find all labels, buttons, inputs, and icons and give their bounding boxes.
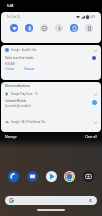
staticText: Take out the trash	[5, 55, 34, 60]
button[interactable]	[5, 196, 97, 205]
button[interactable]: Quick setting	[10, 24, 18, 32]
button[interactable]: Camera	[83, 171, 94, 182]
staticText: 8:00 AM	[5, 62, 15, 66]
button[interactable]: Quick setting	[55, 24, 63, 32]
staticText: Successfully installed	[5, 104, 31, 108]
staticText: Google · Autofill · 8m	[11, 48, 37, 52]
button[interactable]: Manage	[5, 135, 17, 139]
button[interactable]: Chrome	[64, 171, 75, 182]
button[interactable]: Quick setting	[85, 24, 93, 32]
button[interactable]: Google · Autofill · 8m	[1, 45, 101, 80]
staticText: 62%	[90, 15, 96, 19]
staticText: Google · Wi-Fi Pantheria Fib…	[11, 120, 47, 124]
button[interactable]: 1 hour	[5, 67, 15, 71]
button[interactable]: Snooze	[24, 67, 35, 71]
staticText: 5:58	[7, 4, 14, 8]
button[interactable]: Messages	[27, 171, 38, 182]
button[interactable]: Phone	[8, 171, 19, 182]
staticText: Silent notifications	[5, 84, 30, 88]
button[interactable]: Google · Wi-Fi Pantheria Fib…	[5, 120, 97, 124]
button[interactable]: Play Store	[46, 171, 57, 182]
button[interactable]: Clear all	[85, 135, 97, 139]
staticText: Schwab Mobile	[5, 99, 27, 103]
staticText: Fri, Oct 23	[7, 15, 20, 19]
button[interactable]: Quick setting	[25, 24, 33, 32]
button[interactable]: Quick setting	[40, 24, 48, 32]
button[interactable]: Google Play Store · 1h	[1, 90, 101, 112]
staticText: Google Play Store · 1h	[11, 92, 38, 96]
button[interactable]: Quick setting	[70, 24, 78, 32]
